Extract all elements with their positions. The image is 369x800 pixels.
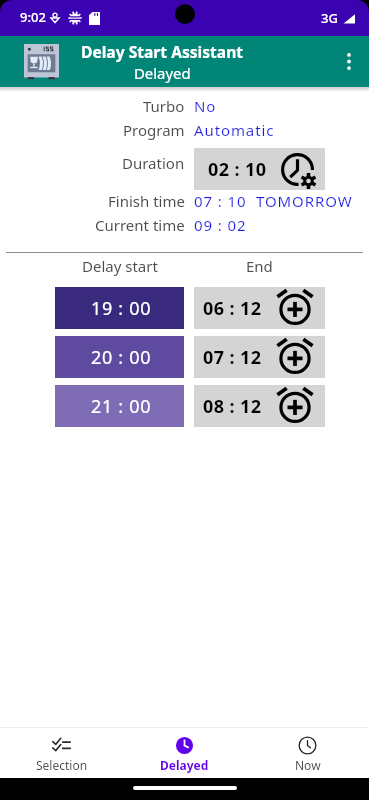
staticText: Delay Start Assistant bbox=[81, 41, 244, 62]
staticText: Selection bbox=[36, 757, 88, 773]
button[interactable]: Delayed bbox=[123, 727, 246, 778]
staticText: 3G bbox=[321, 9, 338, 27]
button[interactable]: 20 : 00 bbox=[55, 336, 184, 378]
button[interactable]: 06 : 12 bbox=[194, 287, 325, 329]
staticText: Program bbox=[123, 120, 185, 140]
button[interactable]: 02 : 10 bbox=[194, 148, 325, 190]
button[interactable]: 08 : 12 bbox=[194, 385, 325, 427]
staticText: Now bbox=[295, 757, 321, 773]
button[interactable]: 21 : 00 bbox=[55, 385, 184, 427]
other: Now bbox=[298, 736, 317, 755]
staticText: Finish time bbox=[108, 191, 185, 211]
staticText: 07 : 12 bbox=[203, 345, 262, 370]
staticText: Duration bbox=[122, 153, 185, 173]
other: Selection bbox=[52, 736, 71, 755]
other: Dishwasher bbox=[24, 44, 59, 80]
button[interactable]: More options bbox=[329, 36, 369, 87]
other: Delayed bbox=[175, 736, 194, 755]
staticText: Turbo bbox=[143, 96, 185, 116]
staticText: End bbox=[246, 256, 273, 276]
staticText: 07 : 10 TOMORROW bbox=[194, 191, 353, 211]
staticText: Delayed bbox=[134, 63, 191, 83]
button[interactable]: 07 : 12 bbox=[194, 336, 325, 378]
staticText: Delayed bbox=[160, 757, 209, 773]
staticText: 19 : 00 bbox=[91, 296, 152, 321]
staticText: Current time bbox=[95, 215, 185, 235]
staticText: 08 : 12 bbox=[203, 394, 262, 419]
staticText: 02 : 10 bbox=[208, 157, 267, 182]
button[interactable]: 19 : 00 bbox=[55, 287, 184, 329]
staticText: Delay start bbox=[82, 256, 158, 276]
staticText: 9:02 bbox=[20, 8, 46, 26]
staticText: 21 : 00 bbox=[91, 394, 152, 419]
staticText: Automatic bbox=[194, 120, 275, 140]
button[interactable]: Now bbox=[246, 727, 369, 778]
button[interactable]: Selection bbox=[0, 727, 123, 778]
staticText: No bbox=[194, 96, 217, 116]
staticText: 09 : 02 bbox=[194, 215, 247, 235]
staticText: 06 : 12 bbox=[203, 296, 262, 321]
staticText: 20 : 00 bbox=[91, 345, 152, 370]
